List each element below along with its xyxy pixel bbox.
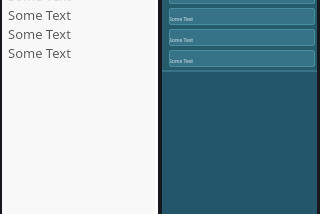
staticText: Some Text xyxy=(169,0,194,2)
staticText: Some Text xyxy=(8,0,71,5)
button[interactable]: Some Text xyxy=(2,43,155,62)
button[interactable]: Some Text xyxy=(169,50,315,67)
button[interactable]: Some Text xyxy=(2,5,155,24)
button[interactable]: Some Text xyxy=(169,29,315,46)
staticText: Some Text xyxy=(8,25,71,43)
button[interactable]: Some Text xyxy=(169,8,315,25)
staticText: Some Text xyxy=(8,6,71,24)
button[interactable]: Some Text xyxy=(2,24,155,43)
staticText: Some Text xyxy=(169,58,194,65)
staticText: Some Text xyxy=(169,16,194,23)
staticText: Some Text xyxy=(169,37,194,44)
staticText: Some Text xyxy=(8,44,71,62)
button[interactable]: Some Text xyxy=(169,0,315,4)
button[interactable]: Some Text xyxy=(2,0,155,5)
